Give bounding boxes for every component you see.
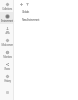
staticText: Monitors — [3, 55, 12, 58]
button[interactable]: Flows — [0, 60, 14, 72]
button[interactable]: Globals — [14, 8, 78, 16]
staticText: Collections — [2, 7, 12, 10]
staticText: Flows — [4, 67, 10, 70]
button[interactable]: Collections — [0, 0, 14, 12]
button[interactable]: Environments — [0, 12, 14, 24]
button[interactable]: Add — [18, 1, 25, 8]
button[interactable]: Mock servers — [0, 36, 14, 48]
staticText: APIs — [5, 31, 10, 34]
button[interactable]: New Environment — [14, 16, 78, 24]
staticText: Environments — [1, 19, 14, 22]
button[interactable]: Profile — [6, 91, 9, 94]
staticText: History — [4, 79, 11, 82]
button[interactable]: Monitors — [0, 48, 14, 60]
staticText: New Environment — [22, 18, 40, 22]
button[interactable]: Filter — [24, 1, 31, 8]
staticText: Mock servers — [1, 43, 14, 46]
button[interactable]: APIs — [0, 24, 14, 36]
button[interactable]: History — [0, 72, 14, 84]
staticText: Globals — [22, 10, 29, 14]
